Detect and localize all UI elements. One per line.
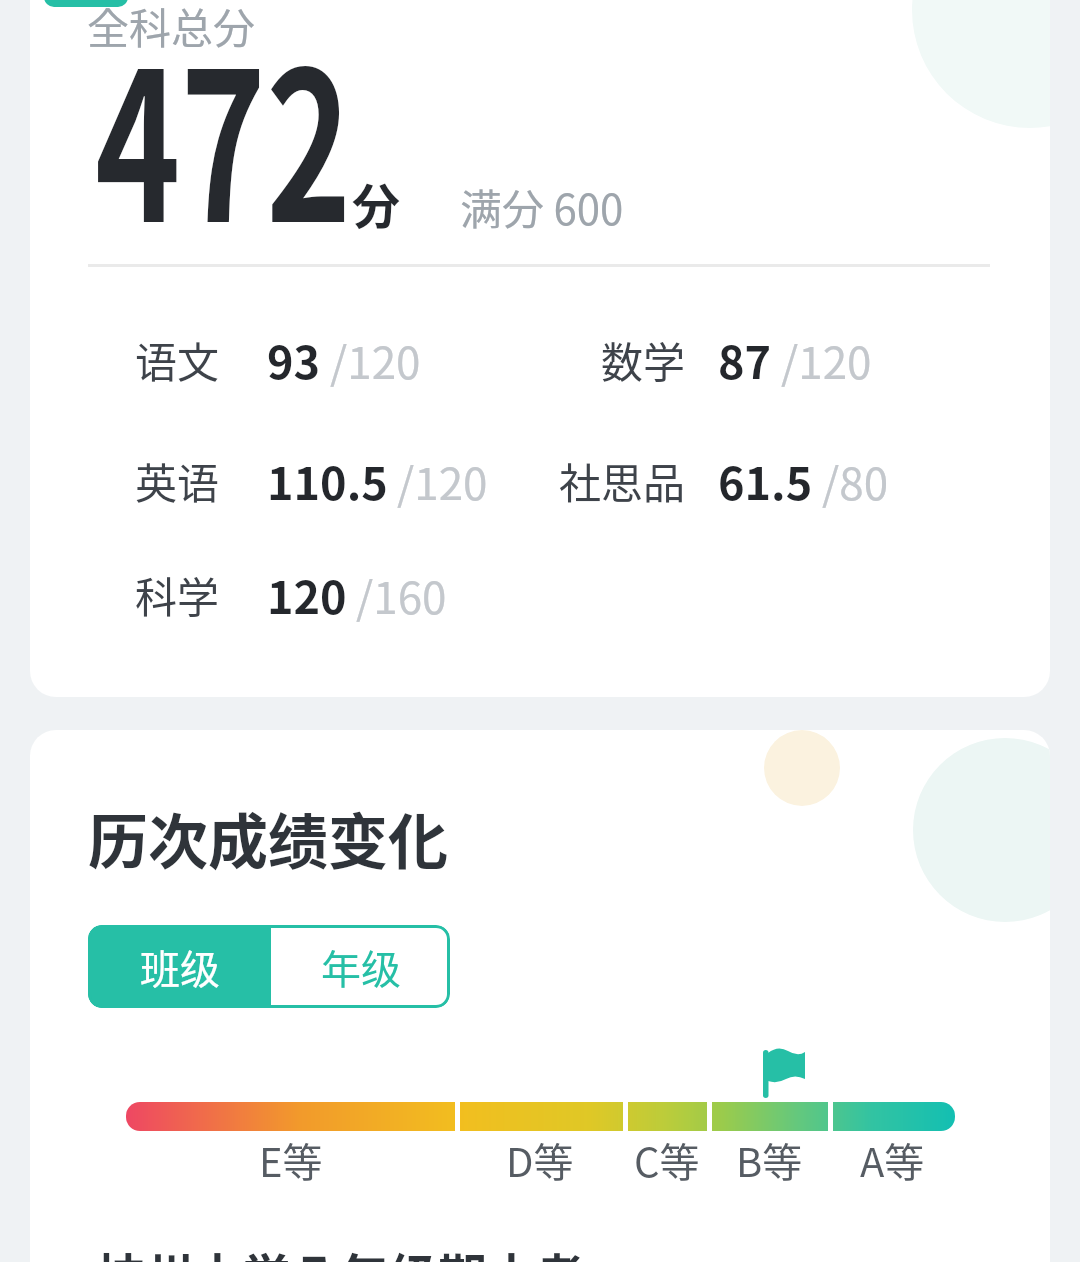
button[interactable]: 班级 (88, 925, 271, 1008)
staticText: B等 (736, 1131, 803, 1189)
staticText: /80 (822, 449, 889, 513)
staticText: 120 (267, 562, 347, 627)
staticText: C等 (634, 1131, 700, 1189)
staticText: 87 (718, 327, 772, 392)
staticText: 历次成绩变化 (88, 794, 448, 881)
staticText: /120 (781, 328, 872, 392)
button[interactable]: 年级 (271, 925, 450, 1008)
staticText: 93 (267, 327, 321, 392)
staticText: 社思品 (559, 450, 686, 511)
staticText: 英语 (135, 450, 220, 511)
staticText: 班级 (140, 938, 220, 996)
staticText: 110.5 (267, 448, 388, 513)
staticText: E等 (259, 1131, 323, 1189)
staticText: 语文 (135, 329, 220, 390)
button[interactable] (44, 0, 128, 7)
staticText: 科学 (135, 564, 220, 625)
staticText: /120 (330, 328, 421, 392)
staticText: 全科总分 (87, 0, 256, 56)
staticText: 满分 600 (460, 176, 624, 237)
staticText: 61.5 (718, 448, 813, 513)
staticText: /160 (356, 563, 447, 627)
staticText: D等 (506, 1131, 574, 1189)
staticText: 数学 (601, 329, 686, 390)
staticText: 分 (352, 168, 401, 238)
staticText: 年级 (321, 938, 401, 996)
staticText: /120 (397, 449, 488, 513)
staticText: 472 (95, 0, 352, 242)
staticText: 杭州中学八年级期中考 (95, 1238, 586, 1262)
staticText: A等 (860, 1131, 925, 1189)
